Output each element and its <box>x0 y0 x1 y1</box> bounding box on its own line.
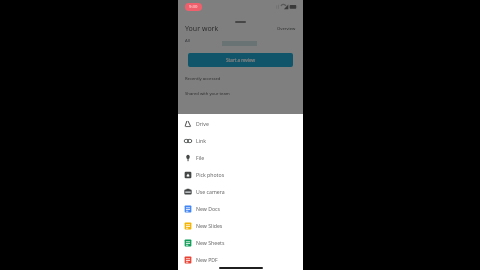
staticText: All <box>185 38 190 44</box>
staticText: New Slides <box>196 222 223 229</box>
staticText: File <box>196 154 205 161</box>
button[interactable]: New PDF <box>178 251 303 268</box>
staticText: Shared with your team <box>185 91 230 97</box>
staticText: Your work <box>185 24 219 34</box>
button[interactable]: Use camera <box>178 183 303 200</box>
staticText: Use camera <box>196 188 225 195</box>
button[interactable]: New Docs <box>178 200 303 217</box>
staticText: Link <box>196 137 207 144</box>
staticText: New PDF <box>196 256 218 263</box>
button[interactable]: Start a review <box>188 53 293 67</box>
button[interactable]: File <box>178 149 303 166</box>
other: Status icons <box>276 3 298 11</box>
button[interactable]: New Slides <box>178 217 303 234</box>
staticText: 9:30 <box>189 4 198 10</box>
button[interactable]: Pick photos <box>178 166 303 183</box>
staticText: New Docs <box>196 205 221 212</box>
button[interactable]: Link <box>178 132 303 149</box>
staticText: Drive <box>196 120 209 127</box>
staticText: Overview <box>277 26 296 32</box>
staticText: Recently accessed <box>185 76 221 82</box>
button[interactable]: Drive <box>178 115 303 132</box>
staticText: New Sheets <box>196 239 225 246</box>
button[interactable]: New Sheets <box>178 234 303 251</box>
staticText: Start a review <box>226 57 256 63</box>
staticText: Pick photos <box>196 171 225 178</box>
